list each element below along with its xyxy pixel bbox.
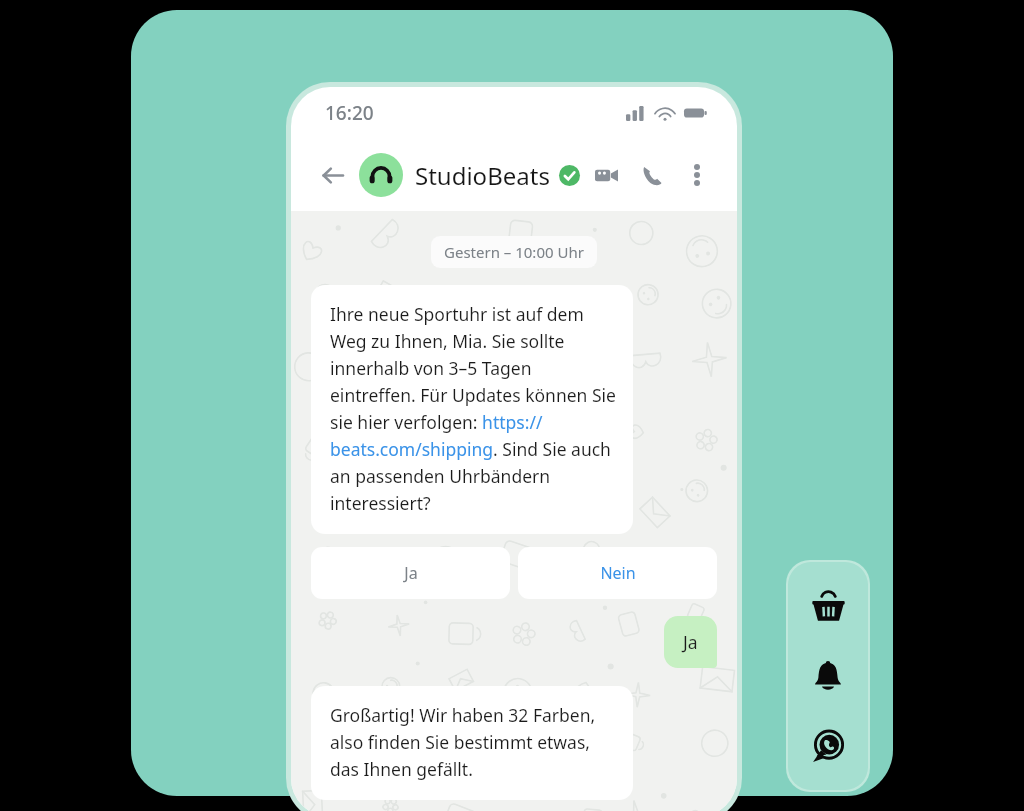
button[interactable]: Shop basket <box>802 580 854 632</box>
button[interactable]: Video call <box>589 158 623 192</box>
staticText: Ihre neue Sportuhr ist auf dem Weg zu Ih… <box>330 302 617 515</box>
button[interactable]: Nein <box>518 547 717 599</box>
staticText: Gestern – 10:00 Uhr <box>444 242 584 262</box>
staticText: Ja <box>404 562 418 584</box>
staticText: Ja <box>683 630 698 654</box>
button[interactable]: Back <box>315 158 349 192</box>
button[interactable]: WhatsApp <box>802 720 854 772</box>
button[interactable]: More options <box>681 159 713 191</box>
staticText: Großartig! Wir haben 32 Farben, also fin… <box>330 703 617 781</box>
staticText: 16:20 <box>325 100 374 126</box>
staticText: Nein <box>600 562 636 584</box>
button[interactable]: Ja <box>664 616 717 668</box>
button[interactable]: Notifications <box>802 650 854 702</box>
button[interactable]: StudioBeats <box>415 159 550 192</box>
button[interactable]: Ja <box>311 547 510 599</box>
button[interactable]: Call <box>635 158 669 192</box>
